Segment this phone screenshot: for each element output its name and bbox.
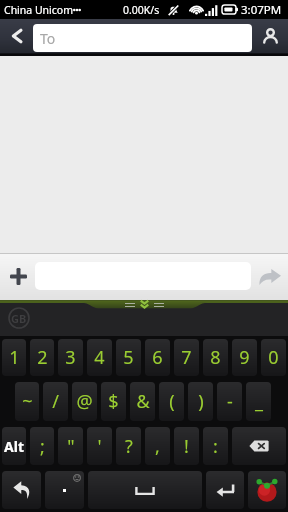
button[interactable]: /: [43, 382, 68, 421]
button[interactable]: 9: [232, 339, 257, 376]
staticText: &: [136, 389, 150, 414]
button[interactable]: 0: [261, 339, 286, 376]
button[interactable]: $: [101, 382, 126, 421]
staticText: -: [227, 389, 233, 414]
staticText: 8: [210, 345, 221, 370]
button[interactable]: -: [217, 382, 242, 421]
button[interactable]: 2: [30, 339, 54, 376]
button[interactable]: Period: [45, 471, 84, 509]
staticText: /: [52, 389, 59, 414]
button[interactable]: 5: [116, 339, 141, 376]
button[interactable]: (: [159, 382, 184, 421]
staticText: ;: [40, 434, 45, 459]
button[interactable]: 1: [2, 339, 26, 376]
button[interactable]: Language: [8, 307, 30, 329]
staticText: (: [169, 389, 175, 414]
staticText: 9: [239, 345, 250, 370]
button[interactable]: ): [188, 382, 213, 421]
staticText: $: [108, 389, 119, 414]
staticText: 0.00K/s: [123, 3, 160, 17]
button[interactable]: &: [130, 382, 155, 421]
staticText: GB: [11, 311, 27, 326]
button[interactable]: Backspace: [232, 427, 286, 465]
button[interactable]: !: [174, 427, 199, 465]
staticText: :: [213, 434, 218, 459]
button[interactable]: Add attachment: [0, 253, 36, 300]
staticText: China Unicom: [4, 3, 74, 17]
button[interactable]: Choose contact: [252, 19, 288, 53]
button[interactable]: Emoji: [248, 471, 286, 509]
button[interactable]: Hide keyboard: [95, 300, 194, 309]
button[interactable]: Send: [252, 253, 288, 300]
staticText: 3:07PM: [241, 2, 282, 18]
staticText: ,: [155, 434, 160, 459]
button[interactable]: Space: [88, 471, 202, 509]
staticText: To: [40, 29, 56, 48]
button[interactable]: ?: [116, 427, 141, 465]
button[interactable]: 6: [145, 339, 170, 376]
staticText: 1: [9, 345, 20, 370]
staticText: ?: [125, 434, 133, 459]
button[interactable]: 4: [87, 339, 112, 376]
button[interactable]: Back: [0, 19, 33, 53]
staticText: Alt: [4, 437, 24, 456]
button[interactable]: Alt: [2, 427, 26, 465]
staticText: ): [198, 389, 204, 414]
button[interactable]: :: [203, 427, 228, 465]
button[interactable]: ": [58, 427, 83, 465]
staticText: 5: [123, 345, 134, 370]
staticText: 0: [268, 345, 279, 370]
staticText: 3: [65, 345, 76, 370]
button[interactable]: ;: [30, 427, 54, 465]
staticText: 4: [94, 345, 105, 370]
staticText: @: [76, 389, 93, 414]
button[interactable]: @: [72, 382, 97, 421]
staticText: 7: [181, 345, 192, 370]
button[interactable]: ': [87, 427, 112, 465]
staticText: 2: [37, 345, 48, 370]
button[interactable]: 3: [58, 339, 83, 376]
staticText: ": [67, 434, 75, 459]
button[interactable]: Enter: [206, 471, 244, 509]
button[interactable]: To: [33, 24, 252, 52]
button[interactable]: 7: [174, 339, 199, 376]
staticText: 6: [152, 345, 163, 370]
staticText: ~: [22, 389, 33, 414]
staticText: _: [255, 389, 263, 414]
staticText: ': [97, 434, 102, 459]
button[interactable]: ~: [15, 382, 39, 421]
staticText: !: [184, 434, 189, 459]
button[interactable]: 8: [203, 339, 228, 376]
button[interactable]: ,: [145, 427, 170, 465]
button[interactable]: Undo: [2, 471, 41, 509]
button[interactable]: _: [246, 382, 271, 421]
